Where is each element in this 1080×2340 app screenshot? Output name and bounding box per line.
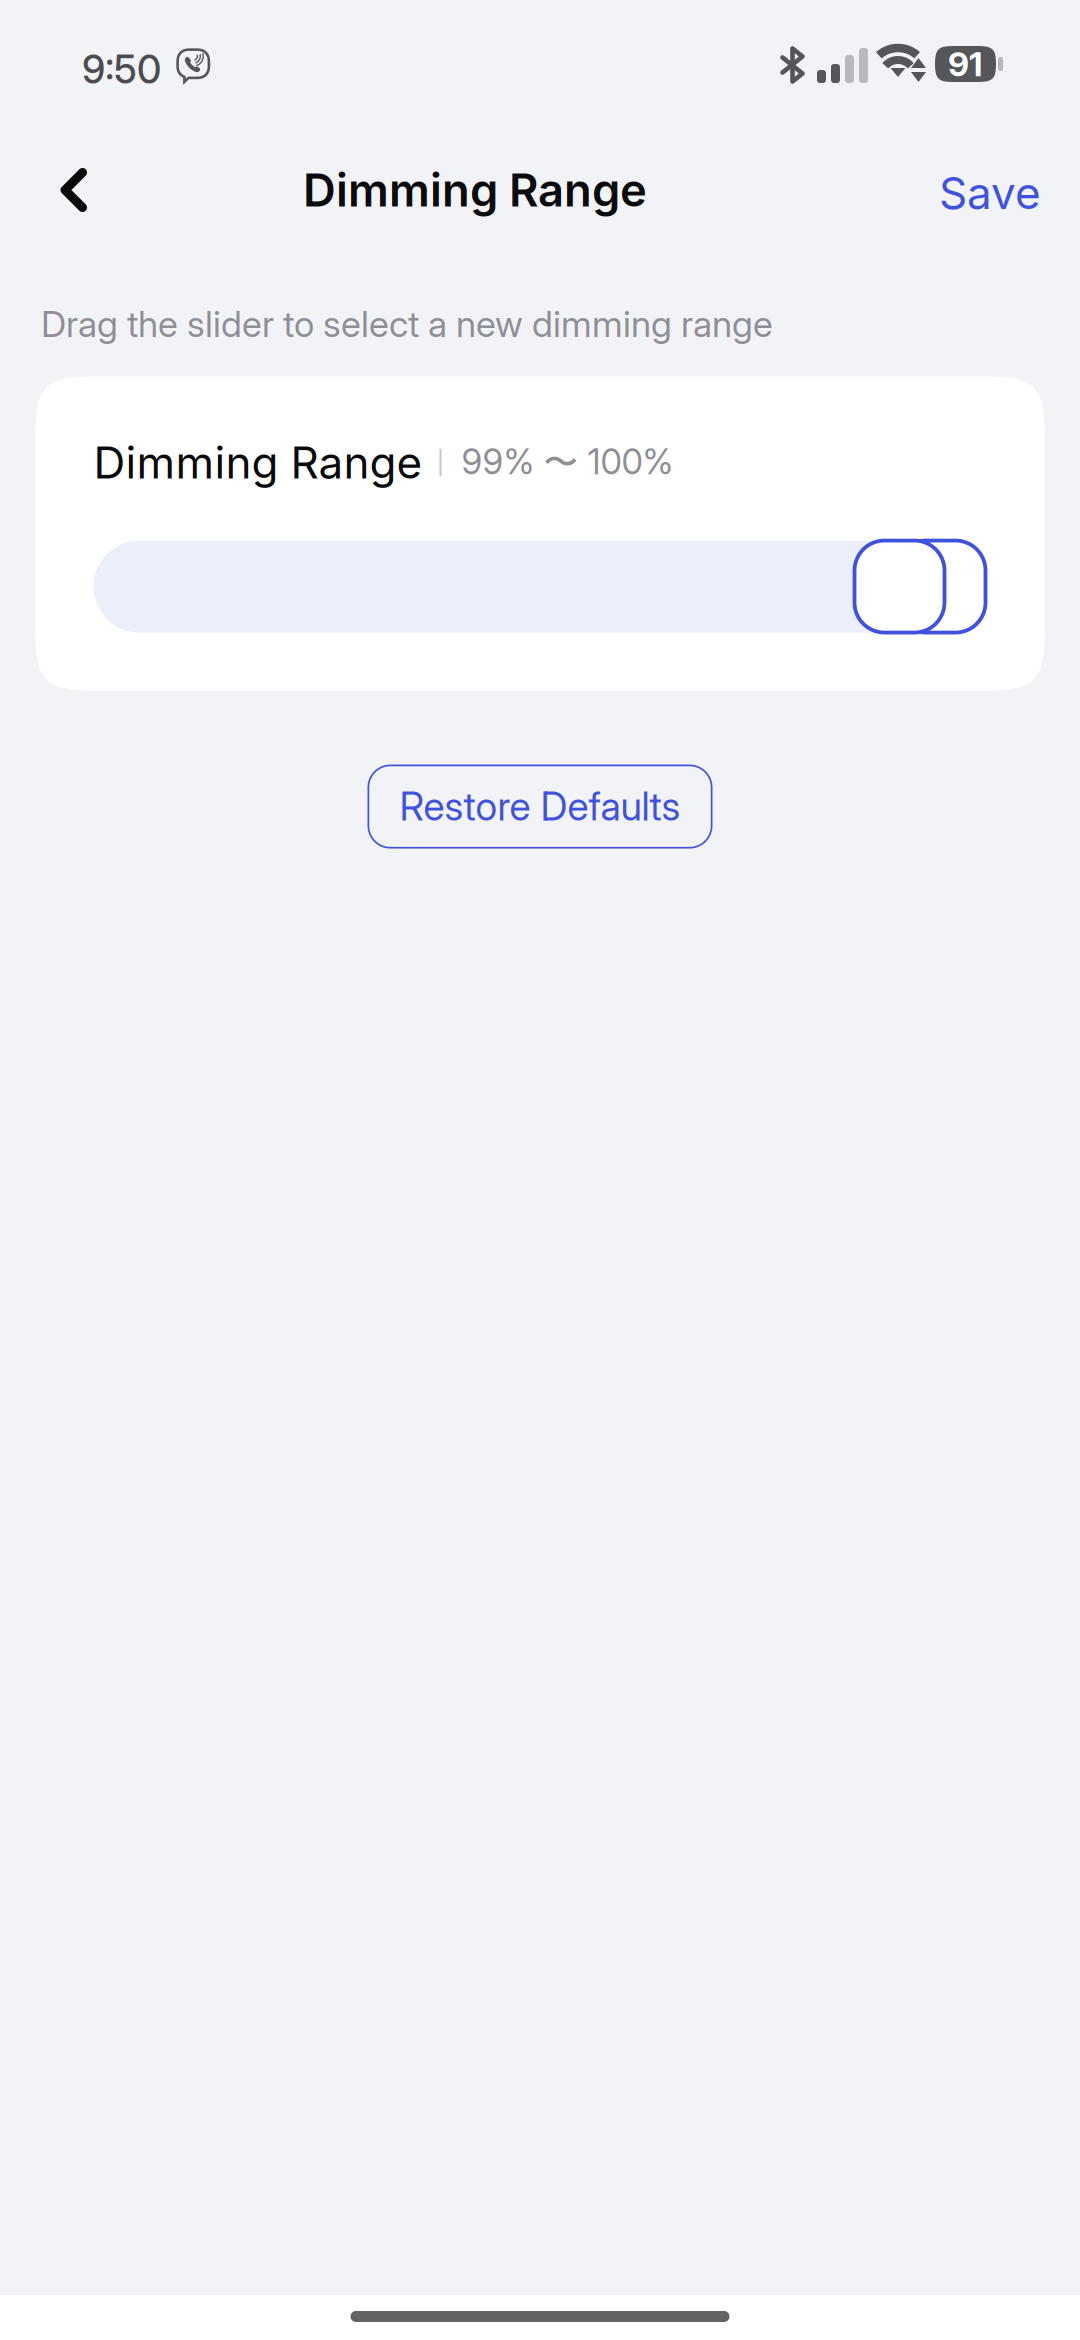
button[interactable]: Save bbox=[891, 145, 1041, 241]
staticText: Restore Defaults bbox=[399, 783, 680, 830]
staticText: Save bbox=[939, 166, 1041, 220]
staticText: 99% 〜 100% bbox=[461, 441, 673, 484]
button[interactable]: Back bbox=[26, 142, 122, 238]
button[interactable]: Dimming range slider, 99% to 100% bbox=[93, 541, 985, 633]
staticText: Drag the slider to select a new dimming … bbox=[41, 302, 773, 346]
button[interactable]: Restore Defaults bbox=[367, 765, 712, 849]
staticText: 9:50 bbox=[82, 46, 161, 93]
staticText: 91 bbox=[948, 44, 983, 84]
staticText: Dimming Range bbox=[93, 436, 422, 489]
staticText: Dimming Range bbox=[303, 163, 647, 217]
